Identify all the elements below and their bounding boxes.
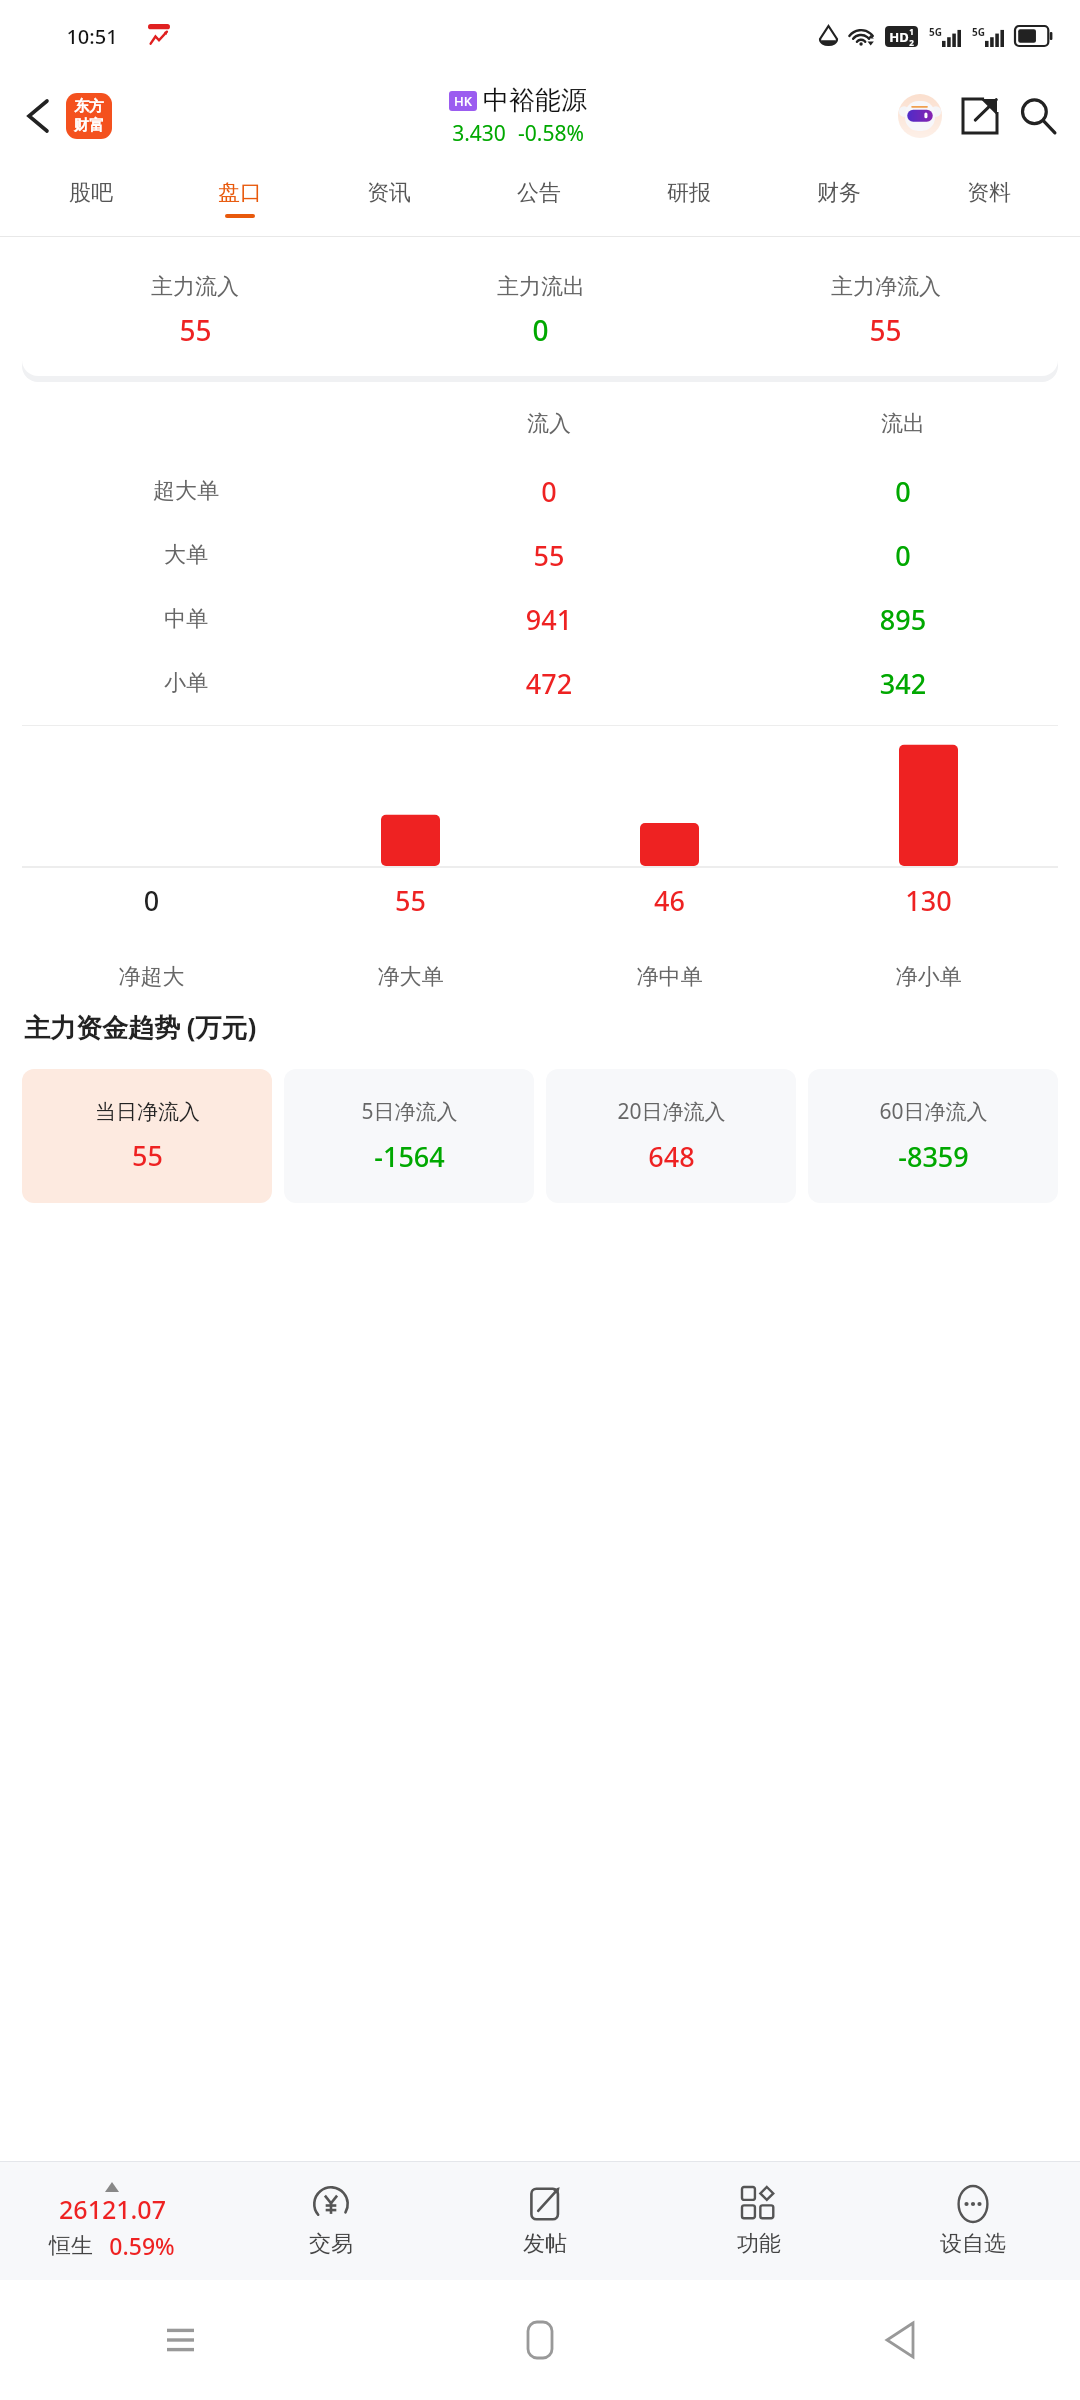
staticText: 20日净流入 [617,1097,726,1126]
staticText: 342 [726,665,1080,702]
staticText: 主力资金趋势 (万元) [24,1009,257,1045]
staticText: 55 [132,1137,163,1174]
staticText: -0.58% [518,119,584,148]
button[interactable]: 股吧 [16,160,165,236]
staticText: 0 [22,882,281,919]
staticText: 净小单 [799,963,1058,991]
button[interactable]: 交易 [224,2162,438,2280]
staticText: 小单 [0,669,372,697]
button[interactable]: Back [720,2280,1080,2400]
button[interactable]: 盘口 [165,160,314,236]
staticText: 0 [726,537,1080,574]
staticText: 941 [372,601,726,638]
staticText: 主力流入 [151,273,239,301]
button[interactable]: 资讯 [314,160,464,236]
staticText: 净超大 [22,963,281,991]
staticText: 10:51 [66,23,118,50]
staticText: 中单 [0,605,372,633]
button[interactable]: 公告 [464,160,614,236]
staticText: 流入 [372,410,726,438]
staticText: 主力净流入 [831,273,941,301]
button[interactable]: Share [954,90,1006,142]
staticText: 2 [909,37,914,47]
button[interactable]: AI assistant [894,90,946,142]
staticText: 净中单 [540,963,799,991]
staticText: 财务 [817,179,861,207]
staticText: 5G [972,25,985,39]
button[interactable]: Back [10,88,66,144]
staticText: 大单 [0,541,372,569]
staticText: 55 [869,311,902,349]
staticText: 55 [179,311,212,349]
button[interactable]: Search [1010,88,1066,144]
staticText: 公告 [517,179,561,207]
staticText: 主力流出 [497,273,585,301]
button[interactable]: 功能 [652,2162,866,2280]
button[interactable]: 中单 [0,587,1080,651]
button[interactable]: HK [449,84,587,148]
staticText: 55 [372,537,726,574]
staticText: 895 [726,601,1080,638]
button[interactable]: 资料 [914,160,1064,236]
button[interactable]: 研报 [614,160,764,236]
button[interactable]: 当日净流入 [22,1069,272,1203]
button[interactable]: Recents [0,2280,360,2400]
staticText: 资讯 [367,179,411,207]
staticText: 55 [281,882,540,919]
button[interactable]: Home [360,2280,720,2400]
button[interactable]: 发帖 [438,2162,652,2280]
staticText: 648 [648,1138,695,1175]
staticText: 5G [929,25,942,39]
staticText: 中裕能源 [483,84,587,117]
staticText: 净大单 [281,963,540,991]
staticText: 46 [540,882,799,919]
button[interactable]: 小单 [0,651,1080,715]
staticText: 1 [909,26,914,37]
staticText: 股吧 [69,179,113,207]
button[interactable]: 60日净流入 [808,1069,1058,1203]
staticText: 130 [799,882,1058,919]
button[interactable]: 主力流入 [22,246,1058,376]
staticText: 超大单 [0,477,372,505]
staticText: 0 [726,473,1080,510]
button[interactable]: 26121.07 [0,2162,224,2280]
staticText: 交易 [309,2230,353,2258]
button[interactable]: 大单 [0,523,1080,587]
staticText: 流出 [726,410,1080,438]
staticText: 研报 [667,179,711,207]
staticText: HD [889,28,909,46]
staticText: 东方 [74,97,104,116]
button[interactable]: 20日净流入 [546,1069,796,1203]
button[interactable]: 财务 [764,160,914,236]
staticText: 财富 [74,116,104,135]
staticText: 0 [532,311,549,349]
staticText: 当日净流入 [95,1099,200,1125]
staticText: 设自选 [940,2230,1006,2258]
staticText: -8359 [898,1138,969,1175]
staticText: 3.430 [452,119,506,148]
staticText: 60日净流入 [879,1097,988,1126]
staticText: 资料 [967,179,1011,207]
button[interactable]: 超大单 [0,459,1080,523]
button[interactable]: 设自选 [866,2162,1080,2280]
staticText: 恒生 [49,2232,93,2260]
staticText: 盘口 [218,179,262,207]
staticText: 发帖 [523,2230,567,2258]
button[interactable]: East Money [66,93,112,139]
staticText: 5日净流入 [361,1097,458,1126]
staticText: 功能 [737,2230,781,2258]
staticText: 0.59% [109,2230,175,2261]
staticText: -1564 [374,1138,445,1175]
staticText: 472 [372,665,726,702]
staticText: 26121.07 [59,2192,166,2226]
staticText: 0 [372,473,726,510]
button[interactable]: 5日净流入 [284,1069,534,1203]
staticText: HK [454,92,472,110]
